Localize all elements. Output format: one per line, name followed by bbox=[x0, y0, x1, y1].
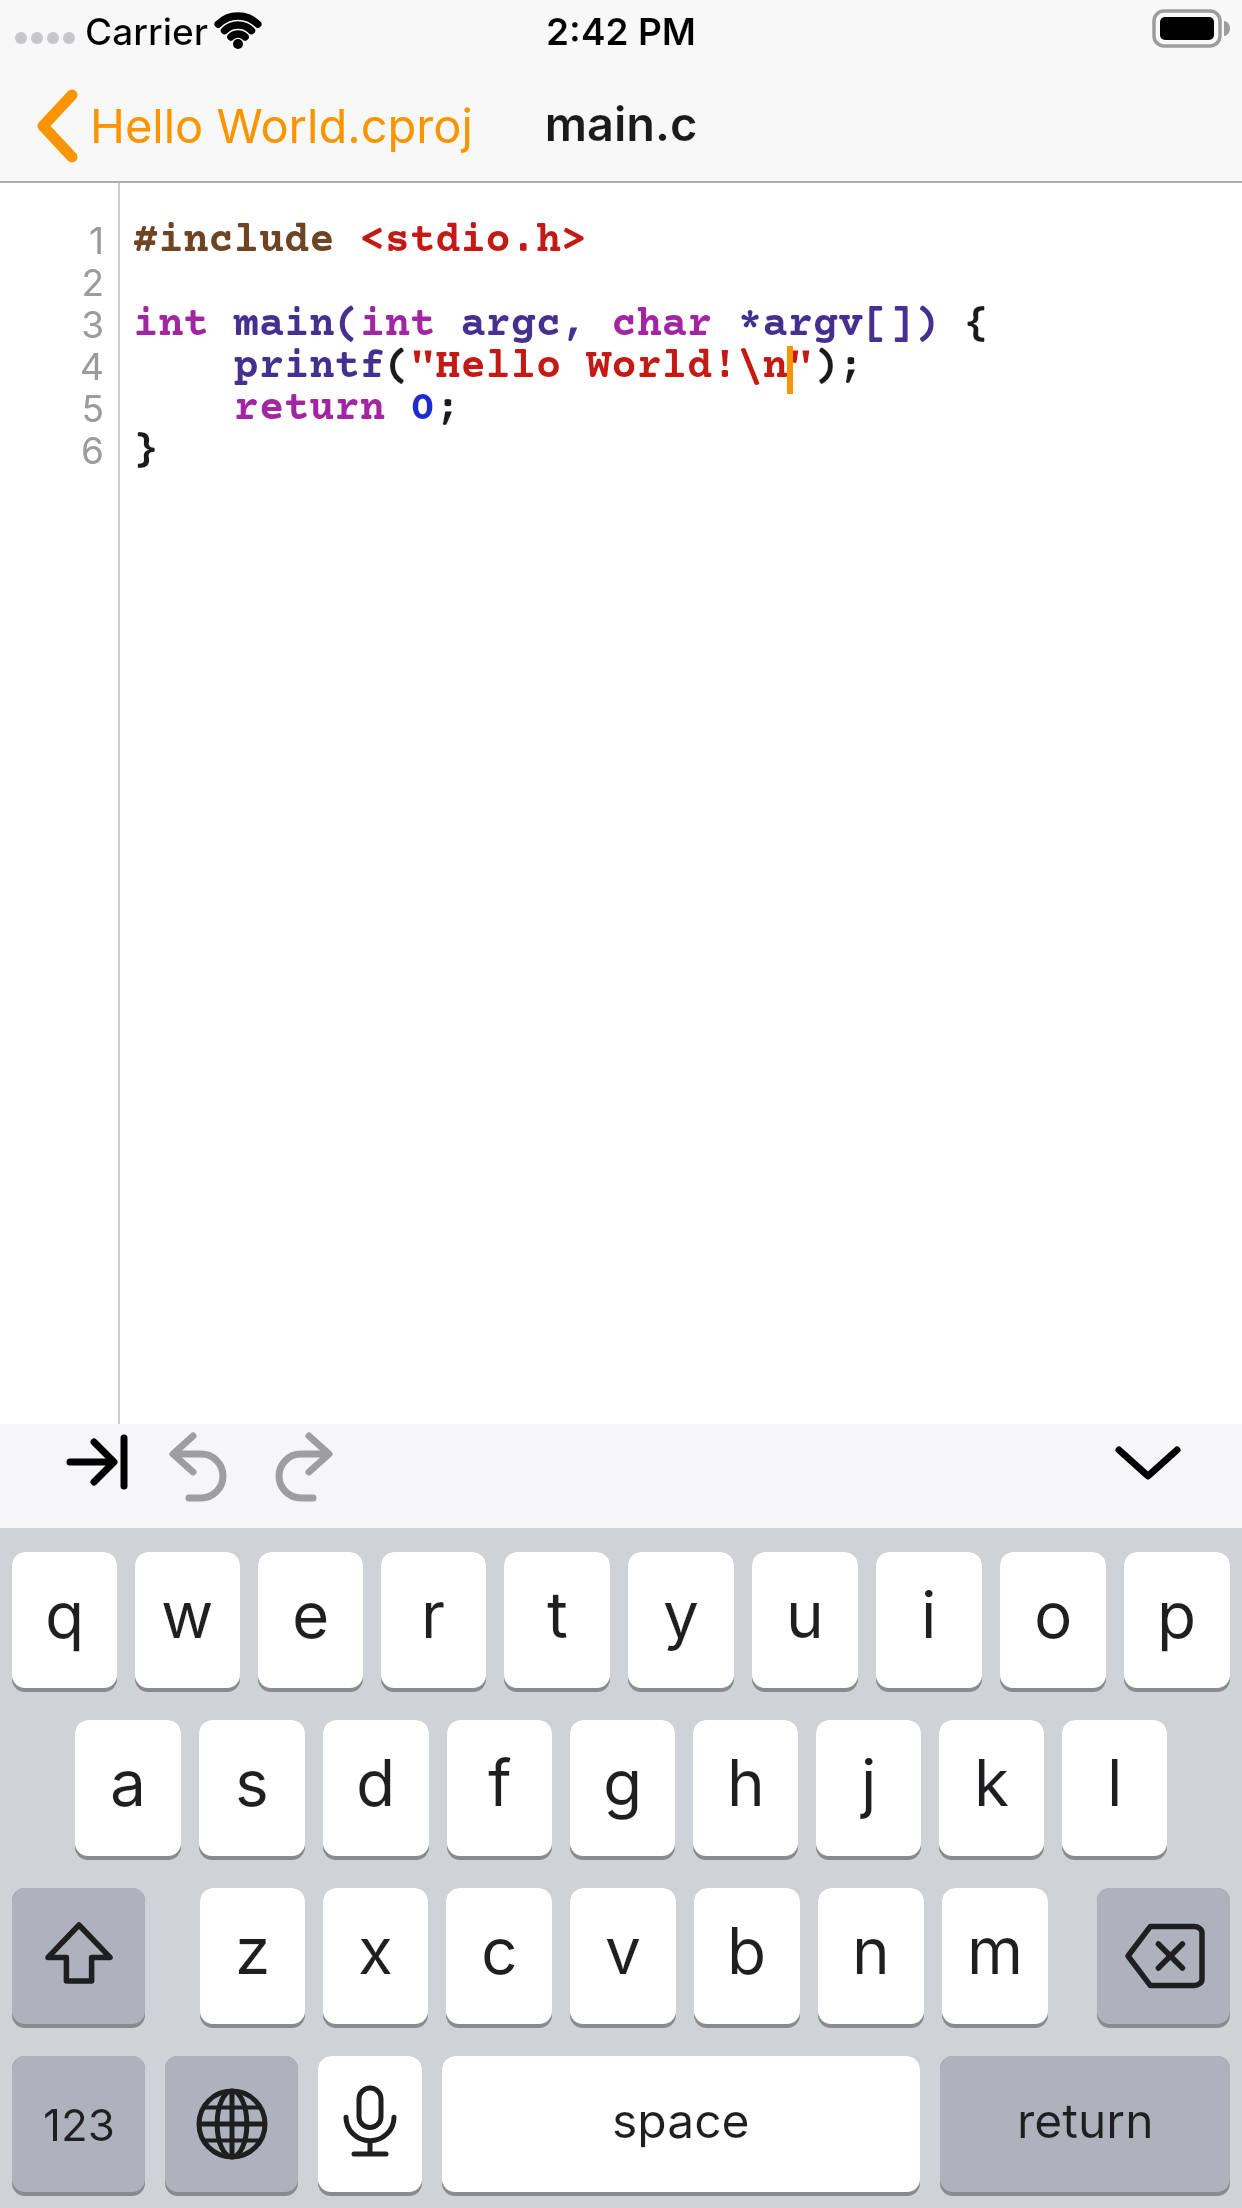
staticText: return bbox=[1017, 2091, 1154, 2149]
staticText: i bbox=[921, 1576, 937, 1653]
staticText: 123 bbox=[43, 2098, 115, 2151]
staticText: l bbox=[1107, 1744, 1123, 1821]
staticText: u bbox=[786, 1576, 824, 1653]
staticText: v bbox=[605, 1912, 641, 1989]
staticText: f bbox=[488, 1744, 512, 1821]
staticText: m bbox=[967, 1912, 1024, 1989]
staticText: h bbox=[727, 1744, 765, 1821]
staticText: 1 2 3 4 5 6 bbox=[0, 218, 104, 473]
staticText: d bbox=[356, 1744, 396, 1821]
staticText: j bbox=[861, 1744, 877, 1821]
staticText: s bbox=[235, 1744, 269, 1821]
staticText: w bbox=[161, 1576, 214, 1653]
staticText: x bbox=[358, 1912, 393, 1989]
staticText: t bbox=[547, 1576, 568, 1653]
staticText: k bbox=[974, 1744, 1010, 1821]
staticText: g bbox=[603, 1744, 643, 1821]
staticText: 2:42 PM bbox=[0, 9, 1242, 54]
staticText: z bbox=[235, 1912, 271, 1989]
staticText: o bbox=[1034, 1576, 1073, 1653]
staticText: c bbox=[481, 1912, 518, 1989]
staticText: b bbox=[727, 1912, 767, 1989]
staticText: e bbox=[292, 1576, 330, 1653]
staticText: r bbox=[421, 1576, 446, 1653]
staticText: Carrier bbox=[85, 9, 209, 54]
staticText: a bbox=[110, 1744, 146, 1821]
staticText: y bbox=[663, 1576, 699, 1653]
staticText: p bbox=[1157, 1576, 1197, 1653]
staticText: #include <stdio.h> int main(int argc, ch… bbox=[133, 218, 990, 476]
staticText: main.c bbox=[0, 95, 1242, 152]
staticText: Hello World.cproj bbox=[90, 97, 473, 154]
staticText: n bbox=[852, 1912, 890, 1989]
staticText: q bbox=[45, 1576, 85, 1653]
staticText: space bbox=[612, 2091, 750, 2149]
